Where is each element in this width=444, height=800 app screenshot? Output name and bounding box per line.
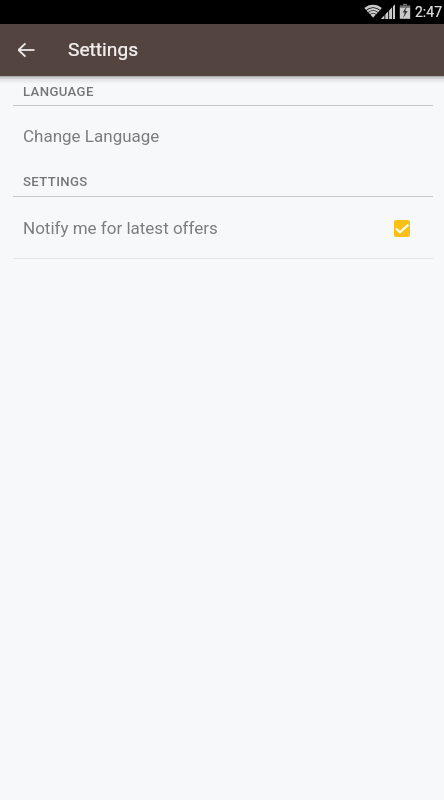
staticText: SETTINGS bbox=[23, 174, 88, 189]
other: Notify me for latest offers, checked bbox=[394, 220, 410, 237]
button[interactable]: Notify me for latest offers bbox=[0, 204, 444, 252]
staticText: Change Language bbox=[23, 126, 160, 146]
staticText: Settings bbox=[68, 38, 139, 61]
button[interactable]: Navigate up bbox=[8, 32, 44, 68]
staticText: LANGUAGE bbox=[23, 84, 94, 99]
staticText: Notify me for latest offers bbox=[23, 218, 394, 238]
button[interactable]: Change Language bbox=[0, 112, 444, 160]
staticText: 2:47 bbox=[415, 4, 442, 20]
